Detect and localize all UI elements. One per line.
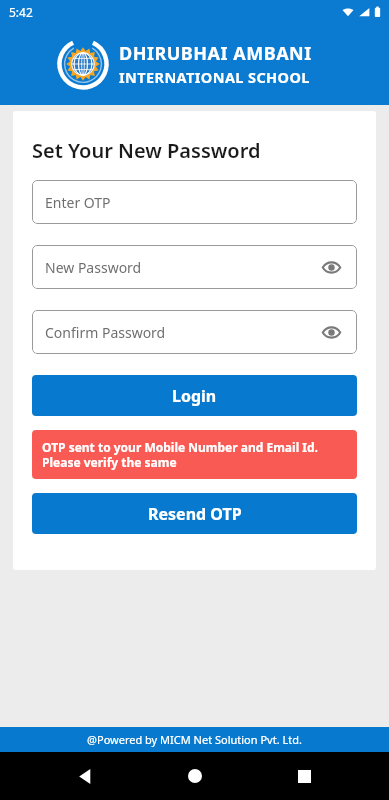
staticText: @Powered by MICM Net Solution Pvt. Ltd. (87, 732, 302, 747)
button[interactable]: Show password (318, 319, 344, 345)
staticText: 5:42 (9, 4, 33, 20)
button[interactable]: Back (61, 752, 109, 800)
staticText: INTERNATIONAL SCHOOL (119, 67, 310, 87)
button[interactable]: Login (32, 375, 357, 416)
button[interactable]: Show password (318, 254, 344, 280)
button[interactable]: Confirm Password (32, 310, 357, 354)
staticText: DHIRUBHAI AMBANI (119, 41, 312, 66)
staticText: Confirm Password (45, 323, 318, 342)
button[interactable]: Enter OTP (32, 180, 357, 224)
button[interactable]: Recent apps (280, 752, 328, 800)
staticText: Enter OTP (45, 193, 344, 212)
button[interactable]: Resend OTP (32, 493, 357, 534)
button[interactable]: Home (171, 752, 219, 800)
staticText: OTP sent to your Mobile Number and Email… (42, 439, 347, 470)
button[interactable]: New Password (32, 245, 357, 289)
staticText: Set Your New Password (32, 137, 261, 164)
staticText: Resend OTP (148, 503, 242, 525)
staticText: New Password (45, 258, 318, 277)
staticText: Login (172, 385, 217, 407)
